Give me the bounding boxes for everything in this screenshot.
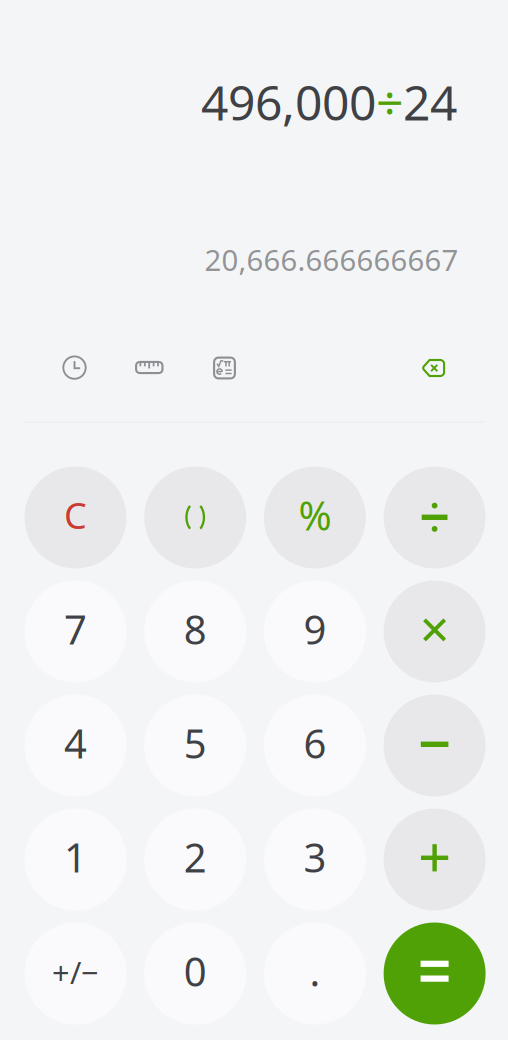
button[interactable]: Plus (384, 808, 486, 910)
button[interactable]: 5 (144, 694, 246, 796)
button[interactable]: +/− (24, 922, 126, 1024)
button[interactable]: Equals (384, 922, 486, 1024)
button[interactable]: % (264, 466, 366, 568)
button[interactable]: 1 (24, 808, 126, 910)
staticText: ÷ (376, 70, 403, 134)
staticText: 496,000 (201, 70, 376, 134)
staticText: +/− (52, 952, 99, 992)
button[interactable]: Parentheses (144, 466, 246, 568)
staticText: 4 (64, 716, 87, 769)
button[interactable]: Unit converter (134, 355, 165, 383)
button[interactable]: Divide (384, 466, 486, 568)
button[interactable]: C (24, 466, 126, 568)
button[interactable]: 4 (24, 694, 126, 796)
button[interactable]: 3 (264, 808, 366, 910)
staticText: 2 (184, 830, 207, 883)
staticText: 8 (184, 602, 207, 655)
button[interactable]: . (264, 922, 366, 1024)
staticText: 24 (403, 70, 457, 134)
button[interactable]: 7 (24, 580, 126, 682)
staticText: 7 (64, 602, 87, 655)
staticText: 6 (303, 716, 326, 769)
button[interactable]: History (60, 355, 88, 383)
staticText: C (64, 491, 87, 539)
button[interactable]: 0 (144, 922, 246, 1024)
button[interactable]: 6 (264, 694, 366, 796)
staticText: 3 (303, 830, 326, 883)
button[interactable]: 9 (264, 580, 366, 682)
button[interactable]: 8 (144, 580, 246, 682)
button[interactable]: Minus (384, 694, 486, 796)
button[interactable]: Delete (420, 355, 446, 383)
staticText: 9 (303, 602, 326, 655)
staticText: 5 (184, 716, 207, 769)
button[interactable]: 2 (144, 808, 246, 910)
staticText: % (298, 488, 331, 541)
staticText: 1 (64, 830, 87, 883)
button[interactable]: Scientific keyboard (212, 355, 237, 383)
staticText: 0 (184, 944, 207, 997)
button[interactable]: Multiply (384, 580, 486, 682)
staticText: 20,666.666666667 (204, 240, 458, 279)
staticText: . (309, 944, 320, 997)
